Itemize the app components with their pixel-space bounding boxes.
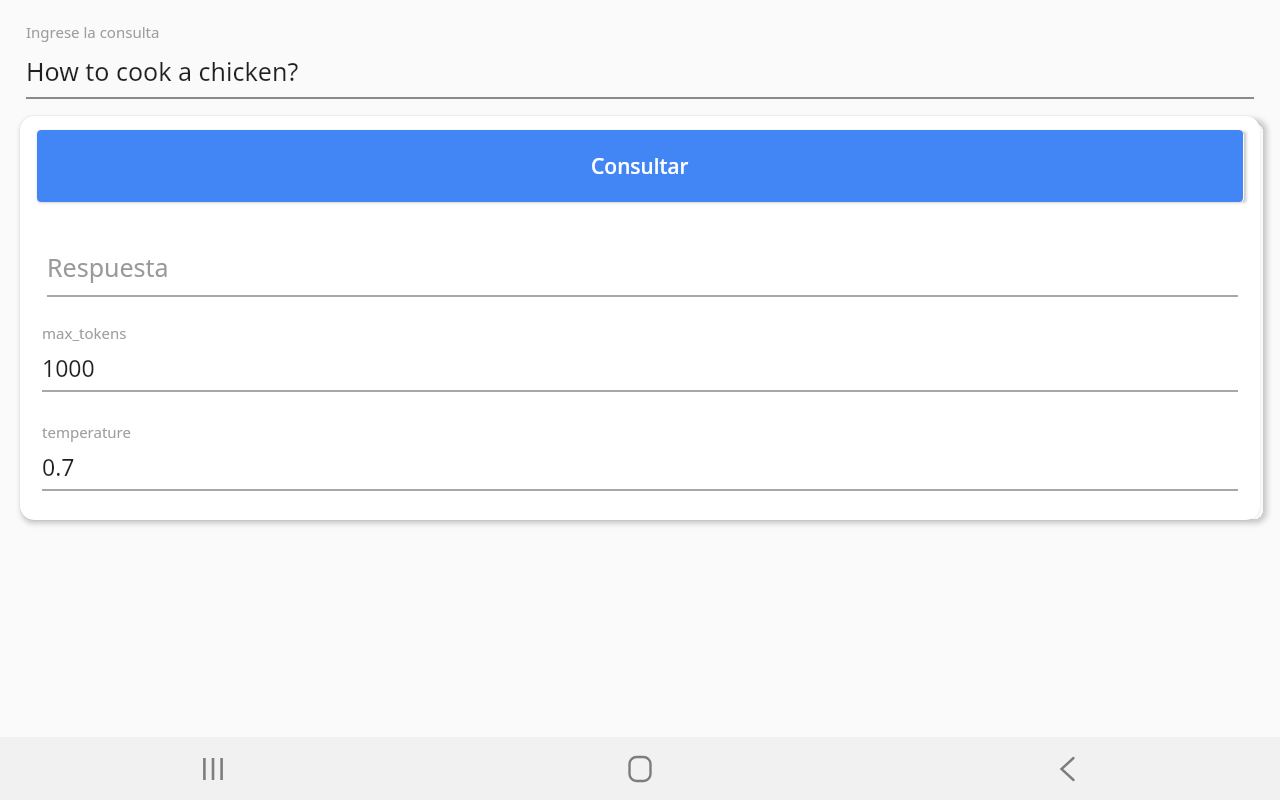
button[interactable]: Respuesta xyxy=(47,250,1238,297)
staticText: Ingrese la consulta xyxy=(26,22,160,42)
button[interactable]: max_tokens xyxy=(42,323,1238,392)
staticText: Respuesta xyxy=(47,250,169,284)
button[interactable]: Home xyxy=(426,737,853,800)
button[interactable]: Back xyxy=(853,737,1280,800)
button[interactable]: Recent apps xyxy=(0,737,426,800)
staticText: How to cook a chicken? xyxy=(26,54,299,88)
staticText: temperature xyxy=(42,422,131,442)
staticText: max_tokens xyxy=(42,323,127,343)
button[interactable]: Consultar xyxy=(37,130,1243,202)
staticText: Consultar xyxy=(591,152,689,181)
staticText: 1000 xyxy=(42,352,95,383)
staticText: 0.7 xyxy=(42,451,75,482)
button[interactable]: How to cook a chicken? xyxy=(26,54,1254,88)
button[interactable]: temperature xyxy=(42,422,1238,491)
